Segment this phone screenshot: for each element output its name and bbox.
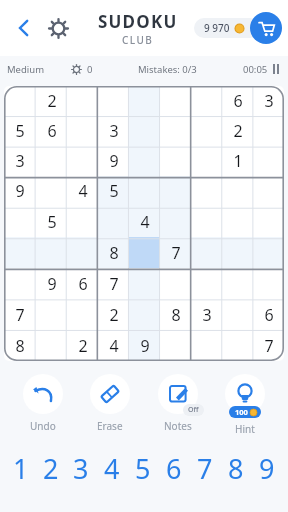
button[interactable] [191, 268, 222, 299]
button[interactable]: 3 [66, 450, 96, 486]
button[interactable]: 7 [160, 237, 191, 268]
button[interactable]: 9 [129, 330, 160, 361]
button[interactable] [4, 268, 36, 299]
button[interactable] [4, 237, 36, 268]
button[interactable] [36, 237, 67, 268]
button[interactable] [191, 176, 222, 206]
button[interactable] [67, 206, 98, 237]
button[interactable]: Erase [79, 374, 141, 433]
button[interactable] [160, 86, 191, 116]
button[interactable]: 3 [4, 146, 36, 176]
button[interactable]: 9 970 [194, 18, 260, 38]
button[interactable] [36, 146, 67, 176]
button[interactable]: 5 [127, 450, 158, 486]
button[interactable] [67, 299, 98, 330]
button[interactable]: 3 [98, 116, 129, 146]
button[interactable]: 4 [129, 206, 160, 237]
button[interactable] [253, 206, 284, 237]
button[interactable] [191, 116, 222, 146]
button[interactable]: 1 [222, 146, 253, 176]
button[interactable]: 2 [36, 86, 67, 116]
button[interactable]: 2 [222, 116, 253, 146]
button[interactable] [160, 268, 191, 299]
button[interactable] [253, 176, 284, 206]
button[interactable] [191, 206, 222, 237]
button[interactable] [129, 237, 160, 268]
button[interactable]: 5 [36, 206, 67, 237]
button[interactable]: 5 [4, 116, 36, 146]
button[interactable]: 8 [220, 450, 251, 486]
button[interactable]: 100 [214, 374, 276, 436]
button[interactable] [67, 86, 98, 116]
button[interactable] [191, 86, 222, 116]
button[interactable] [222, 176, 253, 206]
button[interactable]: 6 [222, 86, 253, 116]
button[interactable]: 7 [4, 299, 36, 330]
button[interactable]: 9 [251, 450, 282, 486]
button[interactable] [4, 206, 36, 237]
button[interactable] [36, 299, 67, 330]
button[interactable] [129, 116, 160, 146]
button[interactable] [191, 146, 222, 176]
button[interactable]: 8 [98, 237, 129, 268]
button[interactable] [222, 268, 253, 299]
button[interactable]: Shop [250, 12, 282, 44]
button[interactable]: Off [147, 374, 209, 433]
staticText: 2 [233, 120, 243, 142]
button[interactable] [129, 268, 160, 299]
button[interactable]: 2 [67, 330, 98, 361]
button[interactable]: 2 [36, 450, 66, 486]
button[interactable] [98, 86, 129, 116]
button[interactable]: 9 [98, 146, 129, 176]
button[interactable]: 6 [36, 116, 67, 146]
button[interactable]: 7 [98, 268, 129, 299]
button[interactable]: Back [6, 10, 42, 46]
button[interactable]: 8 [160, 299, 191, 330]
button[interactable] [67, 116, 98, 146]
button[interactable]: 6 [67, 268, 98, 299]
button[interactable] [129, 86, 160, 116]
button[interactable]: 6 [158, 450, 189, 486]
button[interactable] [129, 176, 160, 206]
button[interactable] [253, 116, 284, 146]
button[interactable]: 6 [253, 299, 284, 330]
button[interactable]: 9 [36, 268, 67, 299]
button[interactable] [222, 206, 253, 237]
button[interactable] [98, 206, 129, 237]
button[interactable]: 7 [253, 330, 284, 361]
button[interactable] [253, 268, 284, 299]
button[interactable] [67, 146, 98, 176]
button[interactable]: 4 [98, 330, 129, 361]
button[interactable] [36, 176, 67, 206]
button[interactable] [129, 146, 160, 176]
button[interactable] [160, 146, 191, 176]
button[interactable]: Undo [12, 374, 74, 433]
button[interactable] [160, 206, 191, 237]
button[interactable] [4, 86, 36, 116]
button[interactable]: 7 [189, 450, 220, 486]
button[interactable]: 3 [253, 86, 284, 116]
button[interactable] [160, 176, 191, 206]
button[interactable] [222, 237, 253, 268]
button[interactable]: 4 [96, 450, 127, 486]
button[interactable] [191, 237, 222, 268]
button[interactable] [222, 330, 253, 361]
button[interactable]: 2 [98, 299, 129, 330]
button[interactable]: 4 [67, 176, 98, 206]
button[interactable] [160, 116, 191, 146]
button[interactable]: 8 [4, 330, 36, 361]
button[interactable]: 5 [98, 176, 129, 206]
button[interactable]: 1 [6, 450, 36, 486]
button[interactable] [160, 330, 191, 361]
button[interactable] [253, 237, 284, 268]
button[interactable] [222, 299, 253, 330]
button[interactable] [191, 330, 222, 361]
button[interactable]: Settings [40, 10, 76, 46]
button[interactable] [129, 299, 160, 330]
button[interactable] [253, 146, 284, 176]
button[interactable] [36, 330, 67, 361]
button[interactable]: 9 [4, 176, 36, 206]
button[interactable]: Pause [273, 64, 279, 74]
button[interactable] [67, 237, 98, 268]
button[interactable]: 3 [191, 299, 222, 330]
